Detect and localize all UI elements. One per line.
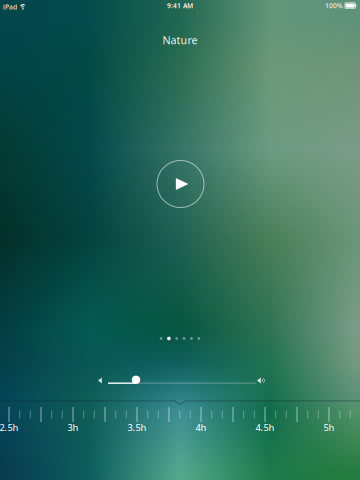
staticText: 9:41 AM — [167, 1, 193, 10]
staticText: iPad — [3, 3, 17, 11]
staticText: 2.5h — [0, 421, 18, 434]
staticText: 5h — [323, 421, 334, 434]
staticText: 3.5h — [127, 421, 146, 434]
staticText: Nature — [162, 33, 197, 47]
staticText: 4h — [195, 421, 206, 434]
staticText: 4.5h — [255, 421, 274, 434]
staticText: 100% — [325, 1, 343, 10]
staticText: 3h — [67, 421, 78, 434]
button[interactable]: Play — [157, 160, 204, 207]
